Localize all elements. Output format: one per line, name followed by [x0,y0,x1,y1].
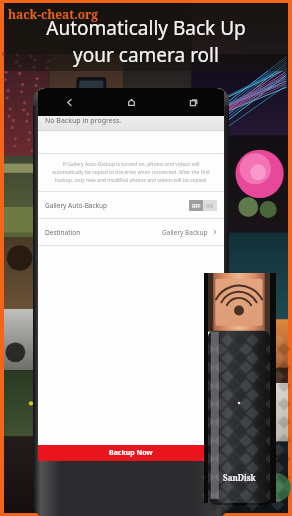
staticText: No Backup in progress. [45,116,122,126]
staticText: Gallery Backup [162,228,208,237]
button[interactable]: Gallery Auto-Backup [38,192,224,218]
staticText: Destination [45,228,162,237]
staticText: Gallery Auto-Backup [45,201,189,210]
staticText: Backup Now [109,448,153,458]
button[interactable]: Destination [38,219,224,245]
staticText: your camera roll [73,42,219,68]
button[interactable]: Back [38,88,224,110]
staticText: OFF [192,203,201,209]
staticText: Automatically Back Up [46,15,246,41]
button[interactable]: Back [38,88,100,116]
staticText: ON [206,203,214,209]
staticText: If Gallery Auto-Backup is turned on, pho… [52,161,210,184]
staticText: hack-cheat.org [8,6,99,22]
button[interactable]: Gallery Auto-Backup toggle, off [189,200,217,211]
staticText: SanDisk [223,472,256,483]
button[interactable]: Backup Now [38,445,224,461]
staticText: Gallery Auto-Backup [61,94,138,105]
button[interactable]: Home [100,88,162,116]
button[interactable]: Recent apps [162,88,224,116]
